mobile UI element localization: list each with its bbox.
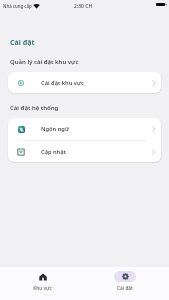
button[interactable]: Ngôn ngữ (8, 118, 161, 140)
button[interactable]: Cập nhật (8, 141, 161, 162)
staticText: 2:30 CH (74, 3, 93, 10)
staticText: Cài đặt khu vực (41, 79, 84, 87)
staticText: Khu vực (33, 285, 52, 292)
staticText: Cài đặt (117, 285, 133, 292)
other: Cài đặt (122, 273, 129, 280)
button[interactable]: Cài đặt (98, 267, 151, 300)
staticText: Cài đặt (10, 37, 35, 47)
staticText: Cập nhật (41, 148, 66, 156)
button[interactable]: Khu vực (16, 267, 69, 300)
button[interactable]: Cài đặt khu vực (8, 72, 161, 93)
staticText: Ngôn ngữ (41, 125, 70, 133)
staticText: Quản lý cài đặt khu vực (10, 58, 79, 66)
other: Khu vực (39, 273, 47, 281)
staticText: Nhà cung cấp (3, 3, 32, 9)
staticText: Cài đặt hệ thống (10, 104, 59, 112)
